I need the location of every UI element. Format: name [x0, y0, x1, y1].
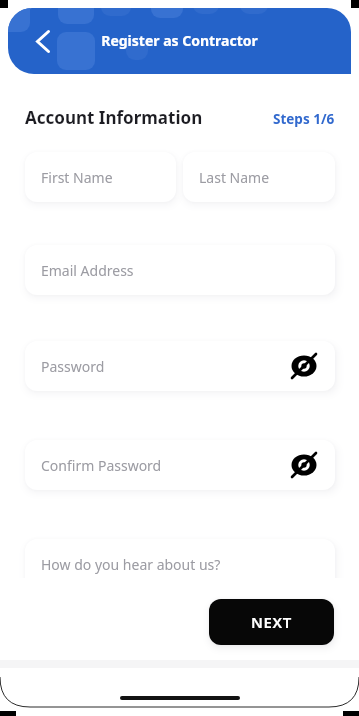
- button[interactable]: Show password: [290, 352, 318, 380]
- button[interactable]: Show password: [290, 451, 318, 479]
- button[interactable]: Back: [23, 21, 63, 61]
- button[interactable]: NEXT: [209, 599, 334, 645]
- button[interactable]: Password: [25, 341, 335, 391]
- button[interactable]: Confirm Password: [25, 440, 335, 490]
- staticText: Account Information: [25, 106, 203, 129]
- staticText: First Name: [41, 168, 113, 187]
- button[interactable]: Email Address: [25, 245, 335, 295]
- staticText: Last Name: [199, 168, 270, 187]
- staticText: Password: [41, 357, 105, 376]
- button[interactable]: First Name: [25, 152, 176, 202]
- staticText: Confirm Password: [41, 456, 162, 475]
- button[interactable]: How do you hear about us?: [25, 539, 335, 578]
- staticText: Email Address: [41, 261, 134, 280]
- staticText: How do you hear about us?: [41, 555, 221, 574]
- staticText: Steps 1/6: [273, 110, 335, 128]
- button[interactable]: Last Name: [183, 152, 335, 202]
- staticText: NEXT: [251, 612, 292, 632]
- staticText: Register as Contractor: [101, 31, 258, 50]
